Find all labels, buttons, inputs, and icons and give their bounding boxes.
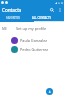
button[interactable]: ALL CONTACTS (26, 14, 56, 22)
staticText: Paula Gonzalez (20, 38, 48, 43)
staticText: Contacts (2, 7, 22, 13)
button[interactable]: ME (0, 22, 64, 35)
button[interactable]: Paula Gonzalez (0, 36, 64, 45)
staticText: ME (2, 27, 7, 31)
staticText: ALL CONTACTS (32, 16, 51, 20)
staticText: Set up my profile (16, 26, 47, 31)
staticText: FAVORITES (6, 16, 20, 20)
button[interactable]: FAVORITES (0, 14, 26, 22)
button[interactable]: More options (56, 6, 64, 14)
button[interactable]: Add contact (46, 88, 53, 95)
staticText: Pedro Gutierrez (20, 47, 49, 52)
button[interactable]: Search (47, 5, 56, 14)
button[interactable]: Pedro Gutierrez (0, 45, 64, 54)
